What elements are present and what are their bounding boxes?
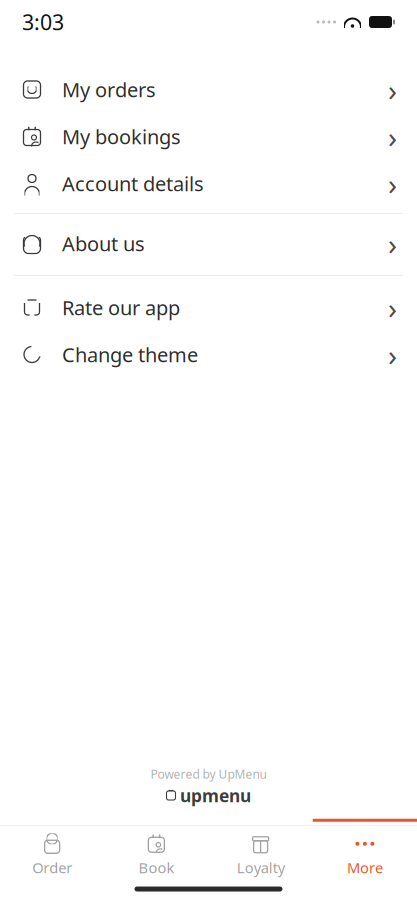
staticText: upmenu bbox=[180, 784, 251, 807]
staticText: More bbox=[347, 858, 383, 877]
staticText: › bbox=[388, 117, 397, 156]
staticText: › bbox=[388, 288, 397, 327]
staticText: Order bbox=[32, 858, 72, 877]
button[interactable]: Loyalty bbox=[208, 826, 313, 878]
staticText: Loyalty bbox=[237, 858, 285, 877]
button[interactable]: About us bbox=[0, 220, 417, 267]
staticText: Book bbox=[138, 858, 174, 877]
button[interactable]: My bookings bbox=[0, 113, 417, 160]
staticText: › bbox=[388, 164, 397, 203]
staticText: About us bbox=[62, 230, 145, 257]
staticText: My bookings bbox=[62, 123, 181, 150]
button[interactable]: Order bbox=[0, 826, 104, 878]
button[interactable]: Change theme bbox=[0, 331, 417, 378]
staticText: Rate our app bbox=[62, 294, 180, 321]
staticText: Account details bbox=[62, 170, 204, 197]
button[interactable]: My orders bbox=[0, 66, 417, 113]
staticText: Powered by UpMenu bbox=[150, 766, 266, 782]
staticText: Change theme bbox=[62, 341, 198, 368]
button[interactable]: Account details bbox=[0, 160, 417, 207]
button[interactable]: Book bbox=[104, 826, 208, 878]
button[interactable]: Rate our app bbox=[0, 284, 417, 331]
staticText: My orders bbox=[62, 76, 156, 103]
button[interactable]: More bbox=[313, 826, 417, 878]
staticText: › bbox=[388, 224, 397, 263]
staticText: › bbox=[388, 335, 397, 374]
staticText: 3:03 bbox=[22, 8, 64, 36]
staticText: › bbox=[388, 70, 397, 109]
